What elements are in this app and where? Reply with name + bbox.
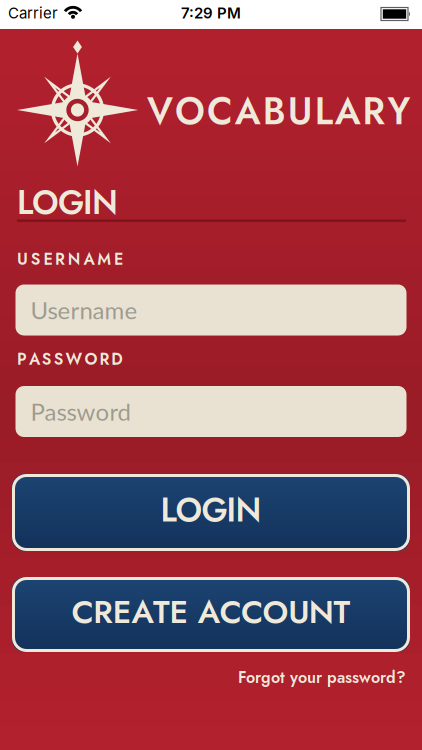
staticText: G [58,179,84,226]
secureTextField[interactable]: Password [30,397,406,426]
button[interactable]: Create Account [12,577,410,652]
staticText: R [93,589,113,635]
staticText: S [54,348,64,371]
staticText: M [97,248,111,271]
staticText: C [241,589,263,635]
staticText: P [17,348,27,371]
staticText: T [333,589,350,635]
button[interactable]: Login [12,474,410,551]
staticText: R [99,348,109,371]
staticText: L [160,486,176,534]
staticText: E [113,589,132,635]
staticText: L [315,85,333,138]
staticText: O [175,85,205,138]
staticText: D [111,348,122,371]
staticText: R [363,85,386,138]
staticText: Y [387,85,410,138]
staticText: 7:29 PM [181,4,241,22]
staticText: S [31,248,41,271]
staticText: C [207,85,233,138]
textField[interactable]: Username [30,296,406,324]
staticText: N [92,179,118,226]
staticText: W [66,348,83,371]
staticText: S [42,348,52,371]
staticText: C [219,589,241,635]
staticText: G [201,486,227,534]
staticText: O [263,589,289,635]
staticText: E [43,248,52,271]
staticText: U [17,248,28,271]
staticText: O [84,348,97,371]
staticText: V [147,85,173,138]
staticText: A [83,248,94,271]
staticText: E [114,248,123,271]
staticText: O [32,179,59,226]
staticText: C [72,589,94,635]
staticText: L [17,179,33,226]
staticText: A [335,85,361,138]
staticText: Carrier [8,4,58,22]
staticText: A [131,589,153,635]
staticText: Forgot your password? [238,666,406,689]
staticText: U [288,85,313,138]
staticText: E [170,589,189,635]
staticText: Password [30,397,130,426]
staticText: A [198,589,220,635]
staticText: O [175,486,202,534]
staticText: U [288,589,309,635]
staticText: I [226,486,236,534]
staticText [188,589,198,635]
staticText: B [263,85,286,138]
staticText: I [83,179,93,226]
staticText: A [235,85,261,138]
staticText: Username [30,296,137,324]
staticText: A [29,348,40,371]
staticText: N [68,248,81,271]
button[interactable]: Forgot your password? [126,666,406,689]
staticText: N [309,589,334,635]
staticText: T [153,589,170,635]
staticText: R [55,248,65,271]
staticText: N [235,486,261,534]
